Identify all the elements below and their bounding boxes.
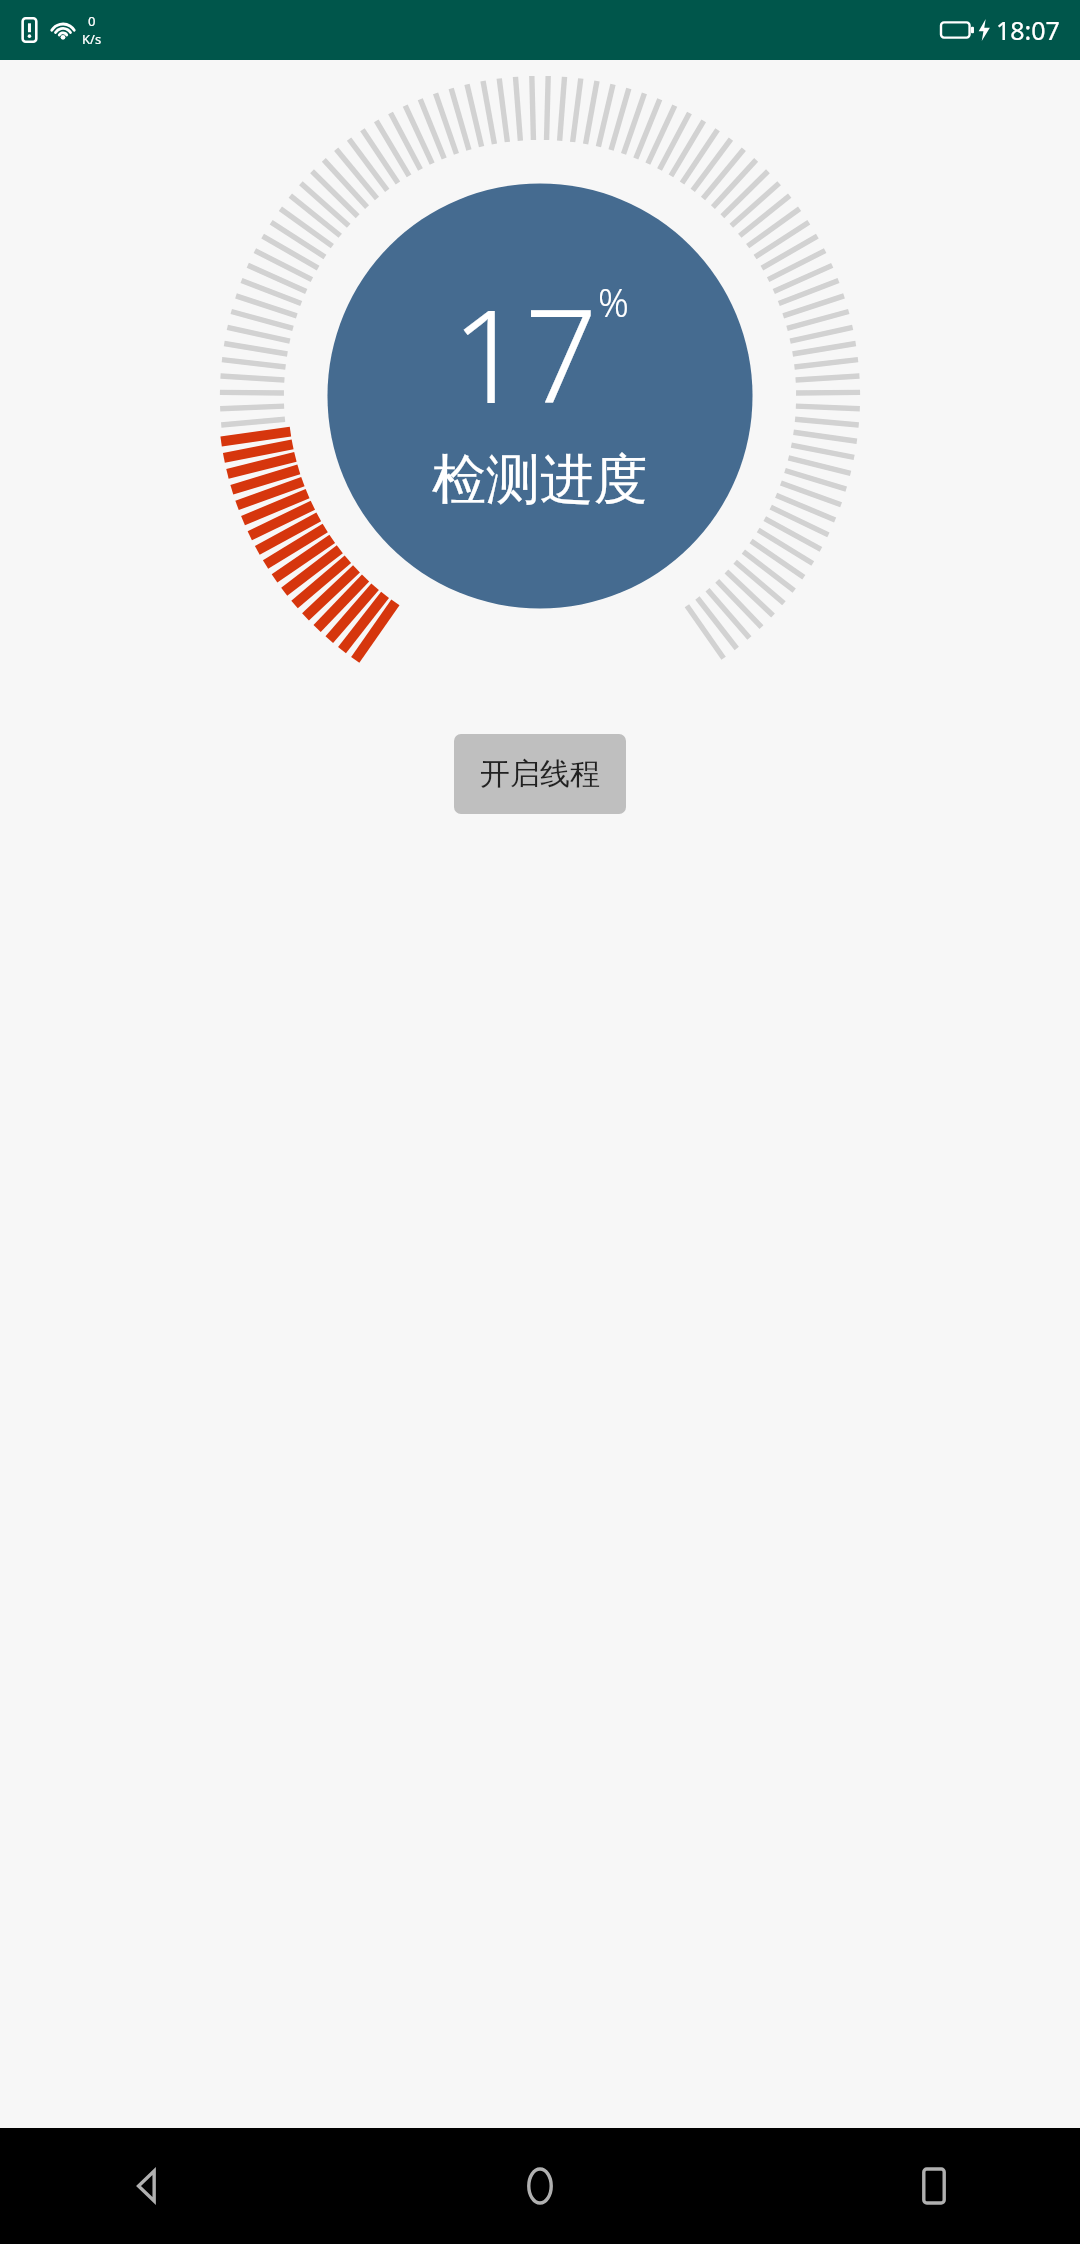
- staticText: 检测进度: [432, 446, 648, 514]
- staticText: 18:07: [996, 13, 1060, 47]
- staticText: 开启线程: [480, 755, 600, 793]
- staticText: %: [598, 276, 629, 328]
- staticText: 0: [88, 12, 96, 30]
- button[interactable]: 开启线程: [454, 734, 626, 814]
- staticText: K/s: [82, 30, 102, 48]
- staticText: 17: [451, 266, 598, 440]
- button[interactable]: Back: [110, 2150, 182, 2222]
- button[interactable]: Home: [504, 2150, 576, 2222]
- button[interactable]: Recent apps: [898, 2150, 970, 2222]
